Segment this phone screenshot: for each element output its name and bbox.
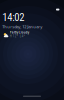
staticText: Thursday, 12 January (2, 24, 42, 29)
staticText: Partly Cloudy (10, 31, 29, 34)
staticText: H 12° L 4° (10, 35, 25, 38)
staticText: 14:02 (2, 11, 24, 24)
